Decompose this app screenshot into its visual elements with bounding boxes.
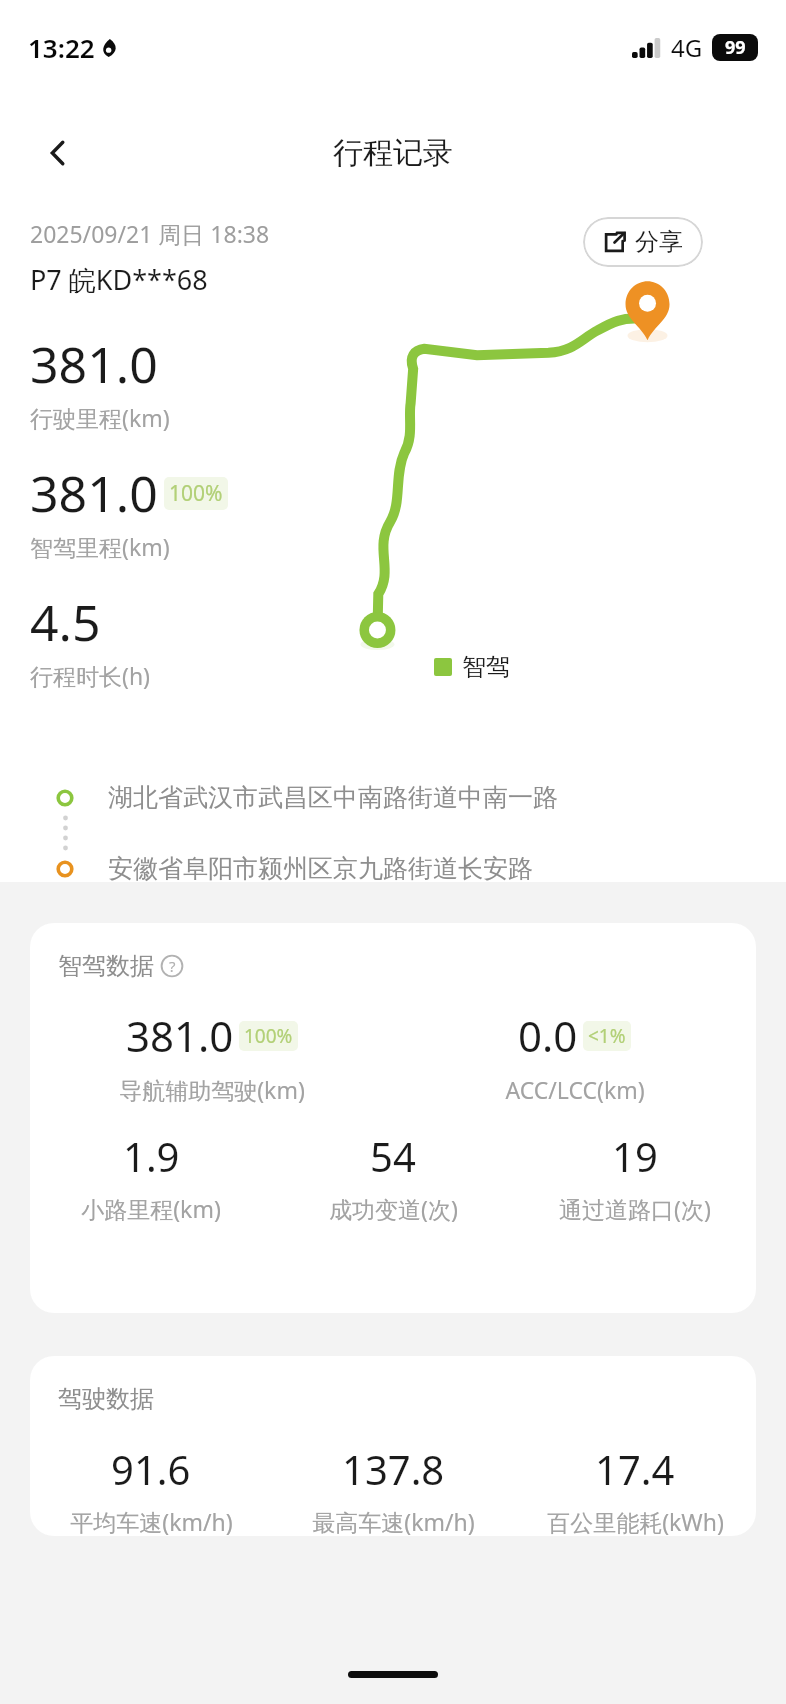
staticText: 平均车速(km/h) <box>70 1506 233 1536</box>
staticText: 小路里程(km) <box>81 1193 221 1224</box>
staticText: 行驶里程(km) <box>30 402 170 433</box>
staticText: 4G <box>671 31 703 64</box>
staticText: 智驾里程(km) <box>30 531 170 562</box>
staticText: 381.0 <box>30 459 158 527</box>
button[interactable]: 说明 <box>160 954 184 978</box>
staticText: 分享 <box>635 227 683 257</box>
staticText: 智驾数据 <box>58 951 154 981</box>
staticText: 驾驶数据 <box>58 1384 154 1414</box>
staticText: ? <box>169 956 176 976</box>
staticText: 湖北省武汉市武昌区中南路街道中南一路 <box>108 782 558 813</box>
staticText: 2025/09/21 周日 18:38 <box>30 218 270 249</box>
staticText: 54 <box>370 1129 416 1183</box>
staticText: 19 <box>612 1129 658 1183</box>
staticText: 1.9 <box>123 1129 180 1183</box>
staticText: 百公里能耗(kWh) <box>547 1506 724 1536</box>
staticText: 0.0 <box>518 1007 578 1064</box>
staticText: 100% <box>169 479 223 508</box>
button[interactable]: Back <box>30 125 86 181</box>
staticText: 381.0 <box>126 1007 234 1064</box>
staticText: 安徽省阜阳市颍州区京九路街道长安路 <box>108 853 533 884</box>
staticText: 99 <box>725 35 746 60</box>
staticText: 智驾 <box>462 652 510 682</box>
staticText: 4.5 <box>30 588 101 656</box>
staticText: 导航辅助驾驶(km) <box>119 1074 305 1105</box>
staticText: 137.8 <box>342 1442 445 1496</box>
staticText: 最高车速(km/h) <box>312 1506 475 1536</box>
staticText: 13:22 <box>28 30 95 65</box>
staticText: 91.6 <box>111 1442 191 1496</box>
staticText: 成功变道(次) <box>329 1193 458 1224</box>
staticText: 17.4 <box>595 1442 675 1496</box>
staticText: 100% <box>244 1023 293 1049</box>
staticText: P7 皖KD***68 <box>30 261 208 298</box>
staticText: <1% <box>588 1023 626 1049</box>
staticText: 通过道路口(次) <box>559 1193 711 1224</box>
staticText: ACC/LCC(km) <box>505 1074 645 1105</box>
button[interactable]: 分享 <box>583 217 703 267</box>
staticText: 381.0 <box>30 330 158 398</box>
staticText: 行程记录 <box>333 134 453 172</box>
staticText: 行程时长(h) <box>30 660 151 691</box>
